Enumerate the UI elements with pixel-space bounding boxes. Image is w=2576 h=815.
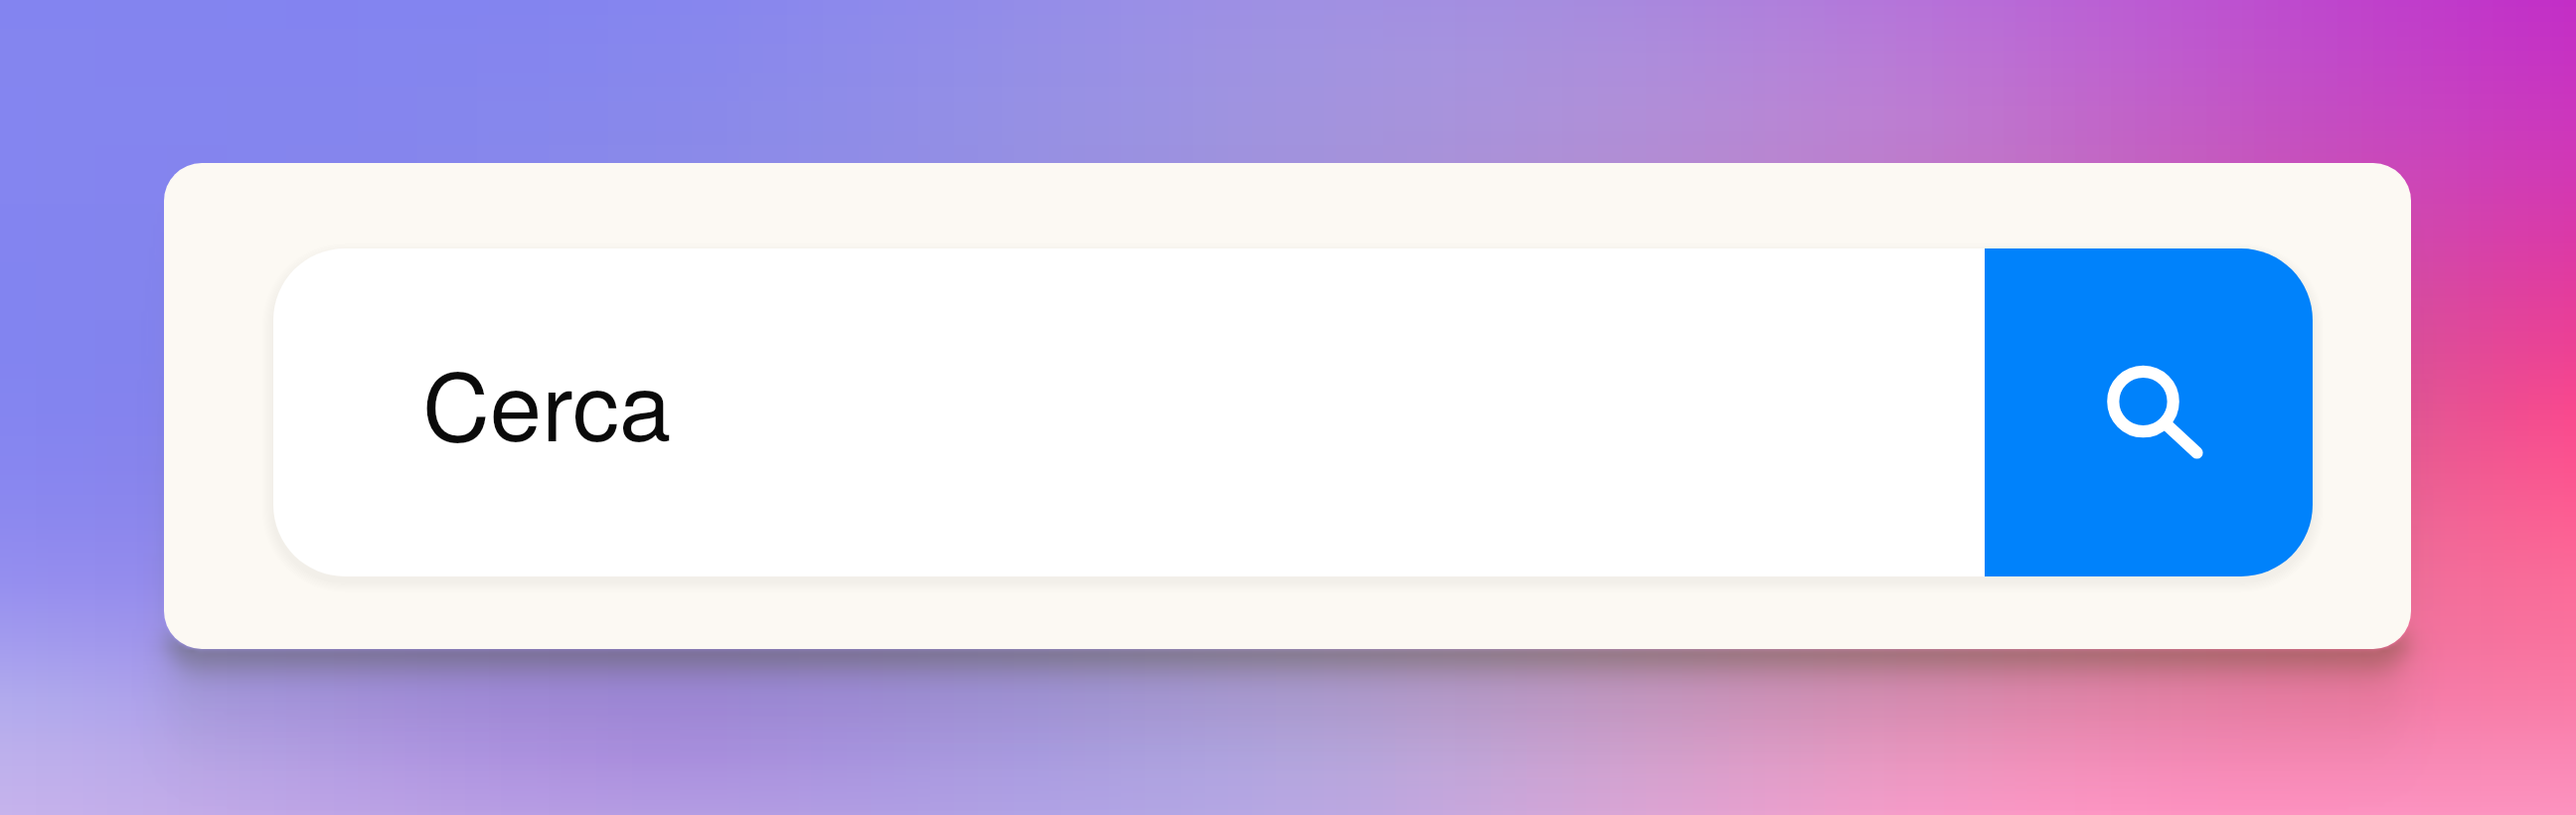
button[interactable]: Search field (273, 248, 1985, 576)
staticText: Cerca (422, 334, 672, 468)
button[interactable]: Search (1985, 248, 2313, 576)
